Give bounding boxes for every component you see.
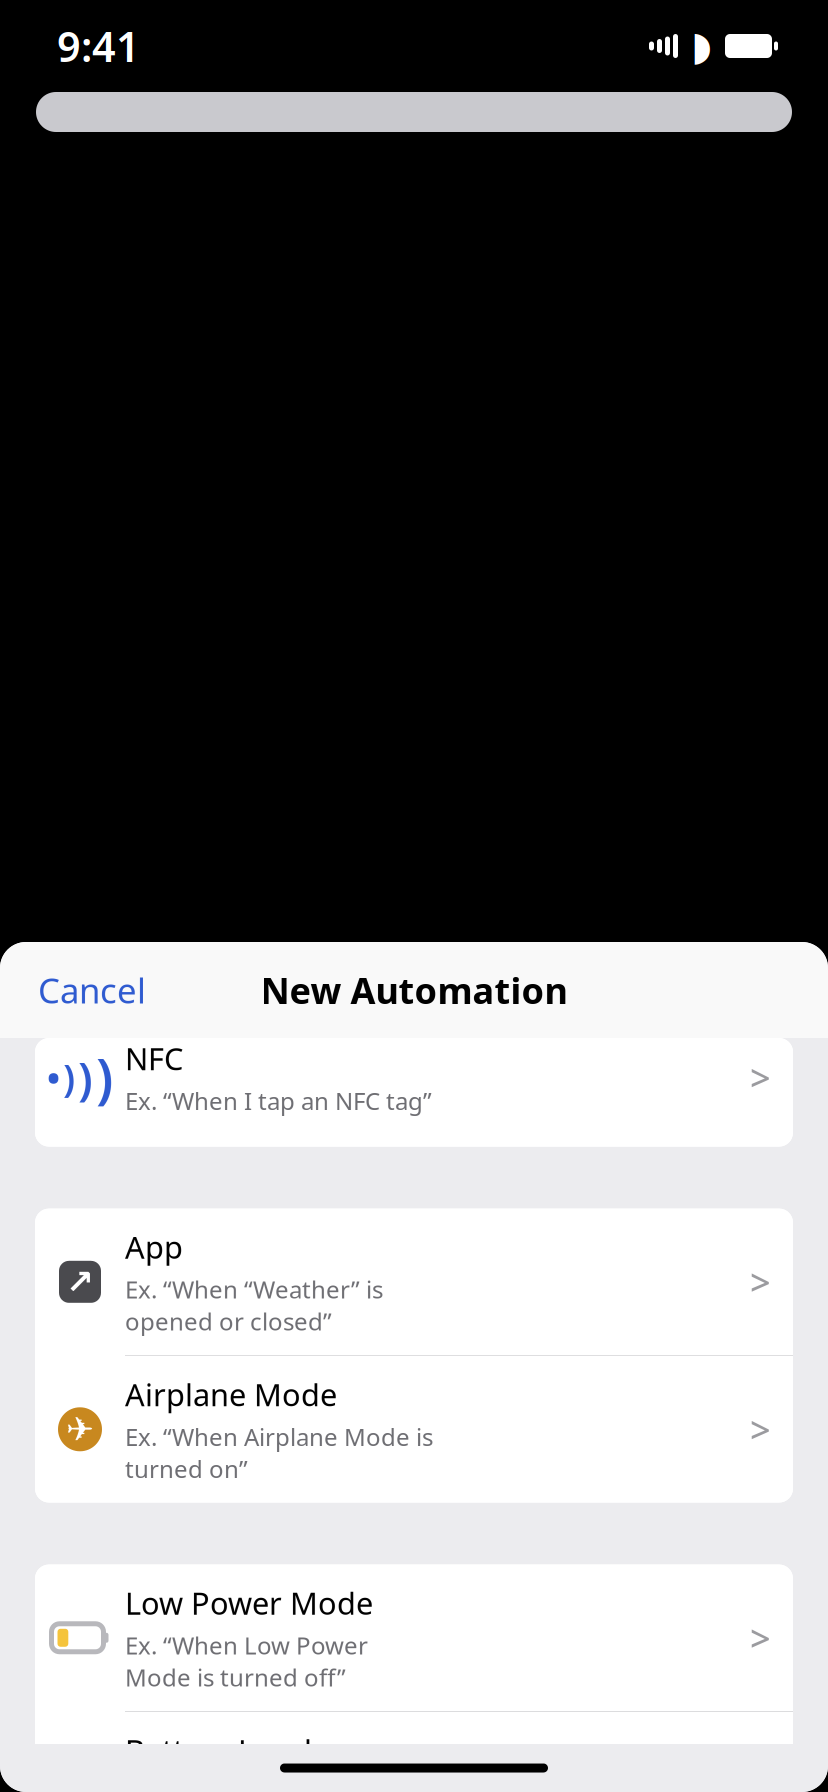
staticText: Battery Level bbox=[125, 1730, 312, 1771]
staticText: • bbox=[47, 1054, 60, 1100]
staticText: > bbox=[750, 1258, 771, 1306]
staticText: New Automation bbox=[260, 966, 567, 1014]
staticText: ✈ bbox=[66, 1410, 94, 1448]
staticText: NFC bbox=[125, 1038, 183, 1079]
staticText: Cancel bbox=[38, 967, 146, 1013]
staticText: Ex. “When Airplane Mode is turned on” bbox=[125, 1421, 433, 1484]
staticText: > bbox=[750, 1614, 771, 1662]
staticText: > bbox=[750, 1405, 771, 1453]
staticText: ) bbox=[63, 1052, 75, 1102]
staticText: > bbox=[750, 1053, 771, 1101]
button[interactable]: Cancel bbox=[0, 949, 184, 1031]
staticText: Airplane Mode bbox=[125, 1374, 337, 1415]
staticText: Ex. “When I tap an NFC tag” bbox=[125, 1085, 432, 1117]
button[interactable]: • bbox=[35, 1038, 793, 1147]
button[interactable]: Low Power Mode bbox=[35, 1564, 793, 1711]
staticText: ) bbox=[78, 1047, 93, 1107]
button[interactable]: ✈ bbox=[35, 1356, 793, 1503]
staticText: Ex. “When Low Power Mode is turned off” bbox=[125, 1629, 368, 1693]
staticText: Low Power Mode bbox=[125, 1582, 373, 1623]
staticText: App bbox=[125, 1227, 183, 1267]
staticText: Ex. “When “Weather” is opened or closed” bbox=[125, 1273, 383, 1337]
staticText: ◗ bbox=[691, 23, 712, 69]
button[interactable]: ↗ bbox=[35, 1209, 793, 1355]
staticText: ) bbox=[96, 1042, 113, 1113]
staticText: 9:41 bbox=[57, 19, 140, 73]
staticText: ↗ bbox=[66, 1263, 94, 1301]
button[interactable]: Battery Level bbox=[35, 1712, 793, 1792]
